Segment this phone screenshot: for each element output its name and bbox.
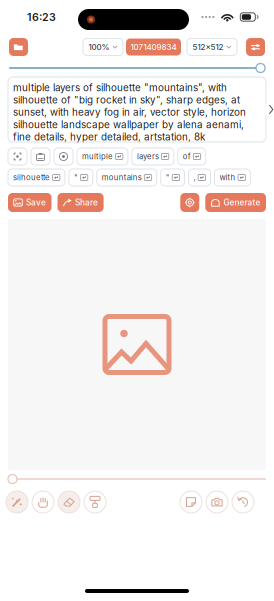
staticText: multiple bbox=[82, 152, 113, 161]
button[interactable]: Save bbox=[8, 193, 51, 212]
button[interactable]: mountains bbox=[97, 169, 157, 186]
button[interactable]: Magic wand bbox=[6, 491, 28, 513]
button[interactable]: 100% bbox=[83, 38, 123, 55]
button[interactable]: Eraser bbox=[58, 491, 80, 513]
button[interactable]: multiple bbox=[77, 148, 128, 165]
staticText: layers bbox=[137, 152, 159, 161]
staticText: silhouette landscape wallpaper by alena … bbox=[13, 119, 244, 130]
staticText: Share bbox=[75, 197, 98, 207]
staticText: sunset, with heavy fog in air, vector st… bbox=[13, 106, 246, 118]
button[interactable]: of bbox=[178, 148, 206, 165]
button[interactable]: Generate bbox=[205, 193, 266, 212]
button[interactable]: Adjust settings bbox=[246, 38, 265, 56]
staticText: Save bbox=[26, 197, 46, 207]
staticText: " bbox=[166, 173, 170, 182]
button[interactable]: Advanced settings bbox=[180, 193, 199, 212]
button[interactable]: 1071409834 bbox=[126, 38, 181, 55]
staticText: " bbox=[74, 173, 78, 182]
button[interactable]: Fill bbox=[84, 491, 106, 513]
staticText: 100% bbox=[88, 42, 109, 52]
button[interactable]: Notes bbox=[180, 491, 202, 513]
button[interactable]: silhouette bbox=[8, 169, 65, 186]
staticText: 16:23 bbox=[27, 10, 56, 23]
button[interactable]: Pan bbox=[32, 491, 54, 513]
button[interactable]: Files bbox=[9, 38, 28, 56]
button[interactable]: Share bbox=[57, 193, 104, 212]
button[interactable]: with bbox=[214, 169, 250, 186]
button[interactable]: Camera bbox=[206, 491, 228, 513]
staticText: of bbox=[183, 152, 191, 161]
staticText: , bbox=[194, 173, 196, 182]
button[interactable]: layers bbox=[132, 148, 174, 165]
button[interactable]: 512x512 bbox=[187, 38, 237, 55]
button[interactable]: Reference image bbox=[31, 148, 50, 165]
staticText: multiple layers of silhouette "mountains… bbox=[13, 82, 227, 94]
staticText: 1071409834 bbox=[130, 42, 176, 52]
button[interactable]: Seed bbox=[54, 148, 73, 165]
button[interactable]: Expand prompt bbox=[262, 104, 274, 115]
staticText: mountains bbox=[102, 173, 142, 182]
staticText: with bbox=[219, 173, 235, 182]
button[interactable]: , bbox=[189, 169, 210, 186]
staticText: fine details, hyper detailed, artstation… bbox=[13, 131, 205, 143]
staticText: 512x512 bbox=[192, 42, 223, 52]
button[interactable]: Crop region bbox=[8, 148, 27, 165]
staticText: silhouette bbox=[13, 173, 50, 182]
button[interactable]: History bbox=[232, 491, 254, 513]
staticText: silhouette of "big rocket in sky", sharp… bbox=[13, 94, 240, 106]
button[interactable]: " bbox=[161, 169, 185, 186]
button[interactable]: " bbox=[69, 169, 93, 186]
staticText: Generate bbox=[223, 197, 260, 207]
